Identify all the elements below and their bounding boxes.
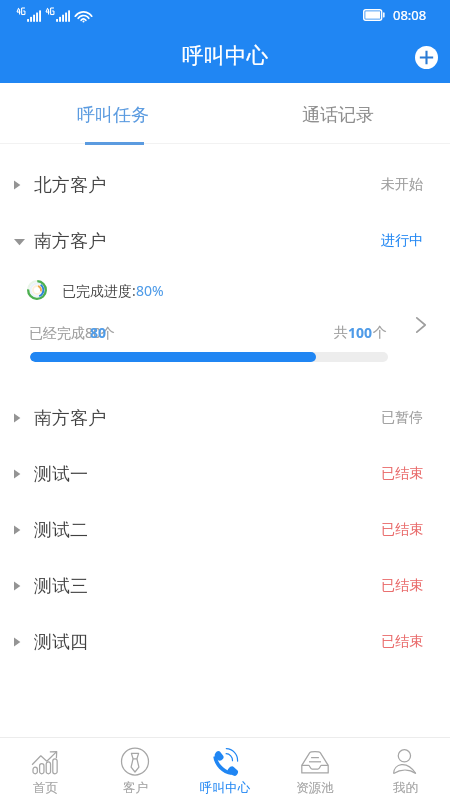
staticText: 个 [373,324,387,342]
staticText: 呼叫中心 [200,780,250,796]
button[interactable]: 客户 [90,738,180,800]
staticText: 共 [334,324,348,342]
staticText: 呼叫任务 [77,104,149,127]
staticText: 100 [348,323,373,342]
button[interactable]: 南方客户 [0,390,450,446]
staticText: 首页 [33,780,58,796]
button[interactable]: 我的 [360,738,450,800]
button[interactable]: 资源池 [270,738,360,800]
button[interactable]: 已完成进度: [0,269,450,390]
staticText: 已完成进度: [62,281,136,300]
staticText: 未开始 [381,176,423,194]
staticText: 通话记录 [302,104,374,127]
button[interactable]: 北方客户 [0,157,450,213]
staticText: 80% [136,281,164,300]
staticText: 已结束 [381,521,423,539]
button[interactable]: Add [415,46,438,69]
staticText: 进行中 [381,232,423,250]
button[interactable]: 测试二 [0,502,450,558]
staticText: 测试三 [34,575,88,598]
staticText: 08:08 [393,6,427,24]
staticText: 南方客户 [34,230,106,253]
staticText: 80 [90,323,107,342]
button[interactable]: 测试四 [0,614,450,670]
staticText: 呼叫中心 [182,42,268,69]
button[interactable]: 测试一 [0,446,450,502]
staticText: 已结束 [381,577,423,595]
button[interactable]: 测试三 [0,558,450,614]
staticText: 我的 [393,780,418,796]
button[interactable]: 首页 [0,738,90,800]
button[interactable]: 南方客户 [0,213,450,269]
staticText: 测试四 [34,631,88,654]
staticText: 北方客户 [34,174,106,197]
staticText: 测试一 [34,463,88,486]
staticText: 资源池 [296,780,334,796]
button[interactable]: 呼叫中心 [180,738,270,800]
staticText: 已暂停 [381,409,423,427]
button[interactable]: 呼叫任务 [0,83,225,144]
staticText: 已经完成80个 [29,323,116,342]
staticText: 测试二 [34,519,88,542]
staticText: 已结束 [381,633,423,651]
button[interactable]: 通话记录 [225,83,450,144]
staticText: 客户 [123,780,148,796]
staticText: 南方客户 [34,407,106,430]
staticText: 已结束 [381,465,423,483]
